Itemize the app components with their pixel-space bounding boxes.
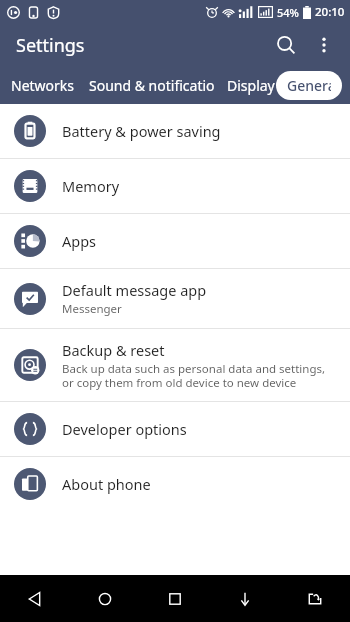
- staticText: 20:10: [315, 4, 345, 20]
- staticText: Networks: [11, 76, 75, 95]
- button[interactable]: Home: [70, 575, 140, 622]
- button[interactable]: Backup & reset: [0, 329, 350, 401]
- staticText: Developer options: [62, 419, 187, 439]
- button[interactable]: Back: [0, 575, 70, 622]
- button[interactable]: Notifications: [210, 575, 280, 622]
- staticText: Apps: [62, 231, 97, 251]
- button[interactable]: Apps: [0, 214, 350, 268]
- button[interactable]: Default message app: [0, 269, 350, 328]
- staticText: General: [287, 76, 331, 95]
- button[interactable]: Battery & power saving: [0, 104, 350, 158]
- button[interactable]: Developer options: [0, 402, 350, 456]
- staticText: Display: [227, 76, 275, 95]
- button[interactable]: More options: [306, 27, 342, 63]
- staticText: Memory: [62, 176, 120, 196]
- button[interactable]: Recents: [140, 575, 210, 622]
- staticText: Sound & notificatio: [89, 76, 215, 95]
- button[interactable]: Search: [266, 25, 306, 65]
- button[interactable]: Memory: [0, 159, 350, 213]
- button[interactable]: Display: [226, 72, 276, 99]
- staticText: Battery & power saving: [62, 121, 221, 141]
- staticText: About phone: [62, 474, 151, 494]
- staticText: Settings: [16, 33, 85, 58]
- button[interactable]: Networks: [10, 72, 76, 99]
- staticText: Messenger: [62, 301, 122, 317]
- button[interactable]: Sound & notificatio: [88, 72, 216, 99]
- staticText: Back up data such as personal data and s…: [62, 361, 336, 390]
- button[interactable]: General: [276, 71, 342, 100]
- staticText: Backup & reset: [62, 340, 165, 360]
- staticText: Default message app: [62, 280, 207, 300]
- button[interactable]: About phone: [0, 457, 350, 511]
- staticText: 54%: [277, 5, 299, 20]
- button[interactable]: Capture plus: [280, 575, 350, 622]
